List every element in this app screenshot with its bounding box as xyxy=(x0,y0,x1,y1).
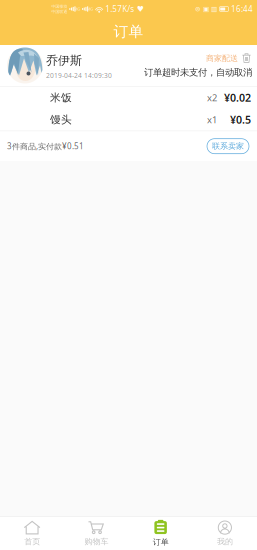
button[interactable]: 首页 xyxy=(0,517,64,550)
staticText: 商家配送 xyxy=(206,53,238,63)
staticText: ¥0.5 xyxy=(230,112,251,127)
staticText: 联系卖家 xyxy=(212,141,244,151)
staticText: x2 xyxy=(207,91,217,104)
staticText: 订单 xyxy=(113,22,143,40)
staticText: ⊜ ▣ ▥ xyxy=(195,5,217,13)
button[interactable]: 我的 xyxy=(193,517,257,550)
staticText: 4G xyxy=(88,6,93,12)
staticText: ♥ xyxy=(137,4,144,14)
staticText: 乔伊斯 xyxy=(46,53,82,68)
staticText: 订单超时未支付，自动取消 xyxy=(144,67,252,78)
staticText: 中国移动 xyxy=(51,4,67,9)
staticText: 2019-04-24 14:09:30 xyxy=(46,71,112,80)
staticText: 16:44 xyxy=(231,4,253,14)
staticText: 3件商品,实付款¥0.51 xyxy=(7,141,84,151)
staticText: 4G xyxy=(75,6,80,12)
staticText: 购物车 xyxy=(84,537,108,546)
staticText: ¥0.02 xyxy=(224,90,251,105)
staticText: x1 xyxy=(207,113,217,126)
button[interactable]: 订单 xyxy=(128,517,193,550)
button[interactable]: 联系卖家 xyxy=(207,139,249,154)
staticText: 中国联通 xyxy=(51,9,67,14)
staticText: 米饭 xyxy=(50,91,72,104)
button[interactable]: Delete order xyxy=(242,53,252,64)
staticText: 首页 xyxy=(24,537,40,546)
staticText: 订单 xyxy=(153,537,169,547)
staticText: 1.57K/s xyxy=(105,4,134,14)
button[interactable]: 购物车 xyxy=(64,517,128,550)
staticText: 馒头 xyxy=(50,113,72,126)
staticText: 我的 xyxy=(217,537,233,546)
